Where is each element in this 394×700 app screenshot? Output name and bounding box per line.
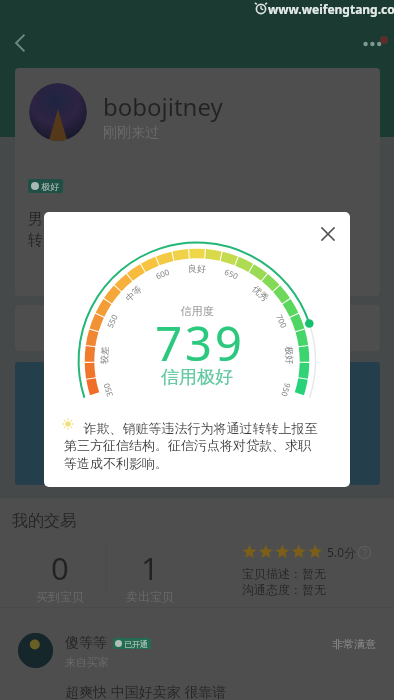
staticText: 0 xyxy=(51,547,69,589)
staticText: 1 xyxy=(141,547,159,589)
button[interactable]: 0 xyxy=(15,547,105,604)
staticText: bobojitney xyxy=(103,90,223,123)
button[interactable]: 1 xyxy=(105,547,195,604)
staticText: 男 xyxy=(28,210,43,229)
button[interactable]: More options xyxy=(358,32,390,56)
staticText: 刚刚来过 xyxy=(103,124,159,142)
staticText: 买到宝贝 xyxy=(36,589,84,604)
staticText: 739 xyxy=(47,311,350,375)
button[interactable]: Close xyxy=(312,218,344,250)
button[interactable]: Back xyxy=(6,29,34,57)
staticText: 极好 xyxy=(39,180,60,192)
staticText: 超爽快 中国好卖家 很靠谱 xyxy=(65,682,227,700)
staticText: 傻等等 xyxy=(65,634,107,652)
staticText: 来自买家 xyxy=(65,655,109,669)
staticText: 非常满意 xyxy=(332,637,376,651)
button[interactable]: 已开通 xyxy=(115,638,149,649)
staticText: 我的交易 xyxy=(12,511,76,531)
staticText: www.weifengtang.com xyxy=(268,1,394,17)
staticText: 宝贝描述：暂无 xyxy=(242,566,326,581)
staticText: 5.0分 xyxy=(324,544,357,560)
button[interactable]: 极好 xyxy=(31,179,60,193)
staticText: 沟通态度：暂无 xyxy=(242,582,326,597)
staticText: 转 xyxy=(28,231,43,250)
staticText: 已开通 xyxy=(122,638,149,649)
staticText: 信用度 xyxy=(44,304,350,318)
staticText: 卖出宝贝 xyxy=(126,589,174,604)
staticText: 诈欺、销赃等违法行为将通过转转上报至 第三方征信结构。征信污点将对贷款、求职 等… xyxy=(64,419,318,472)
staticText: 信用极好 xyxy=(44,366,350,389)
